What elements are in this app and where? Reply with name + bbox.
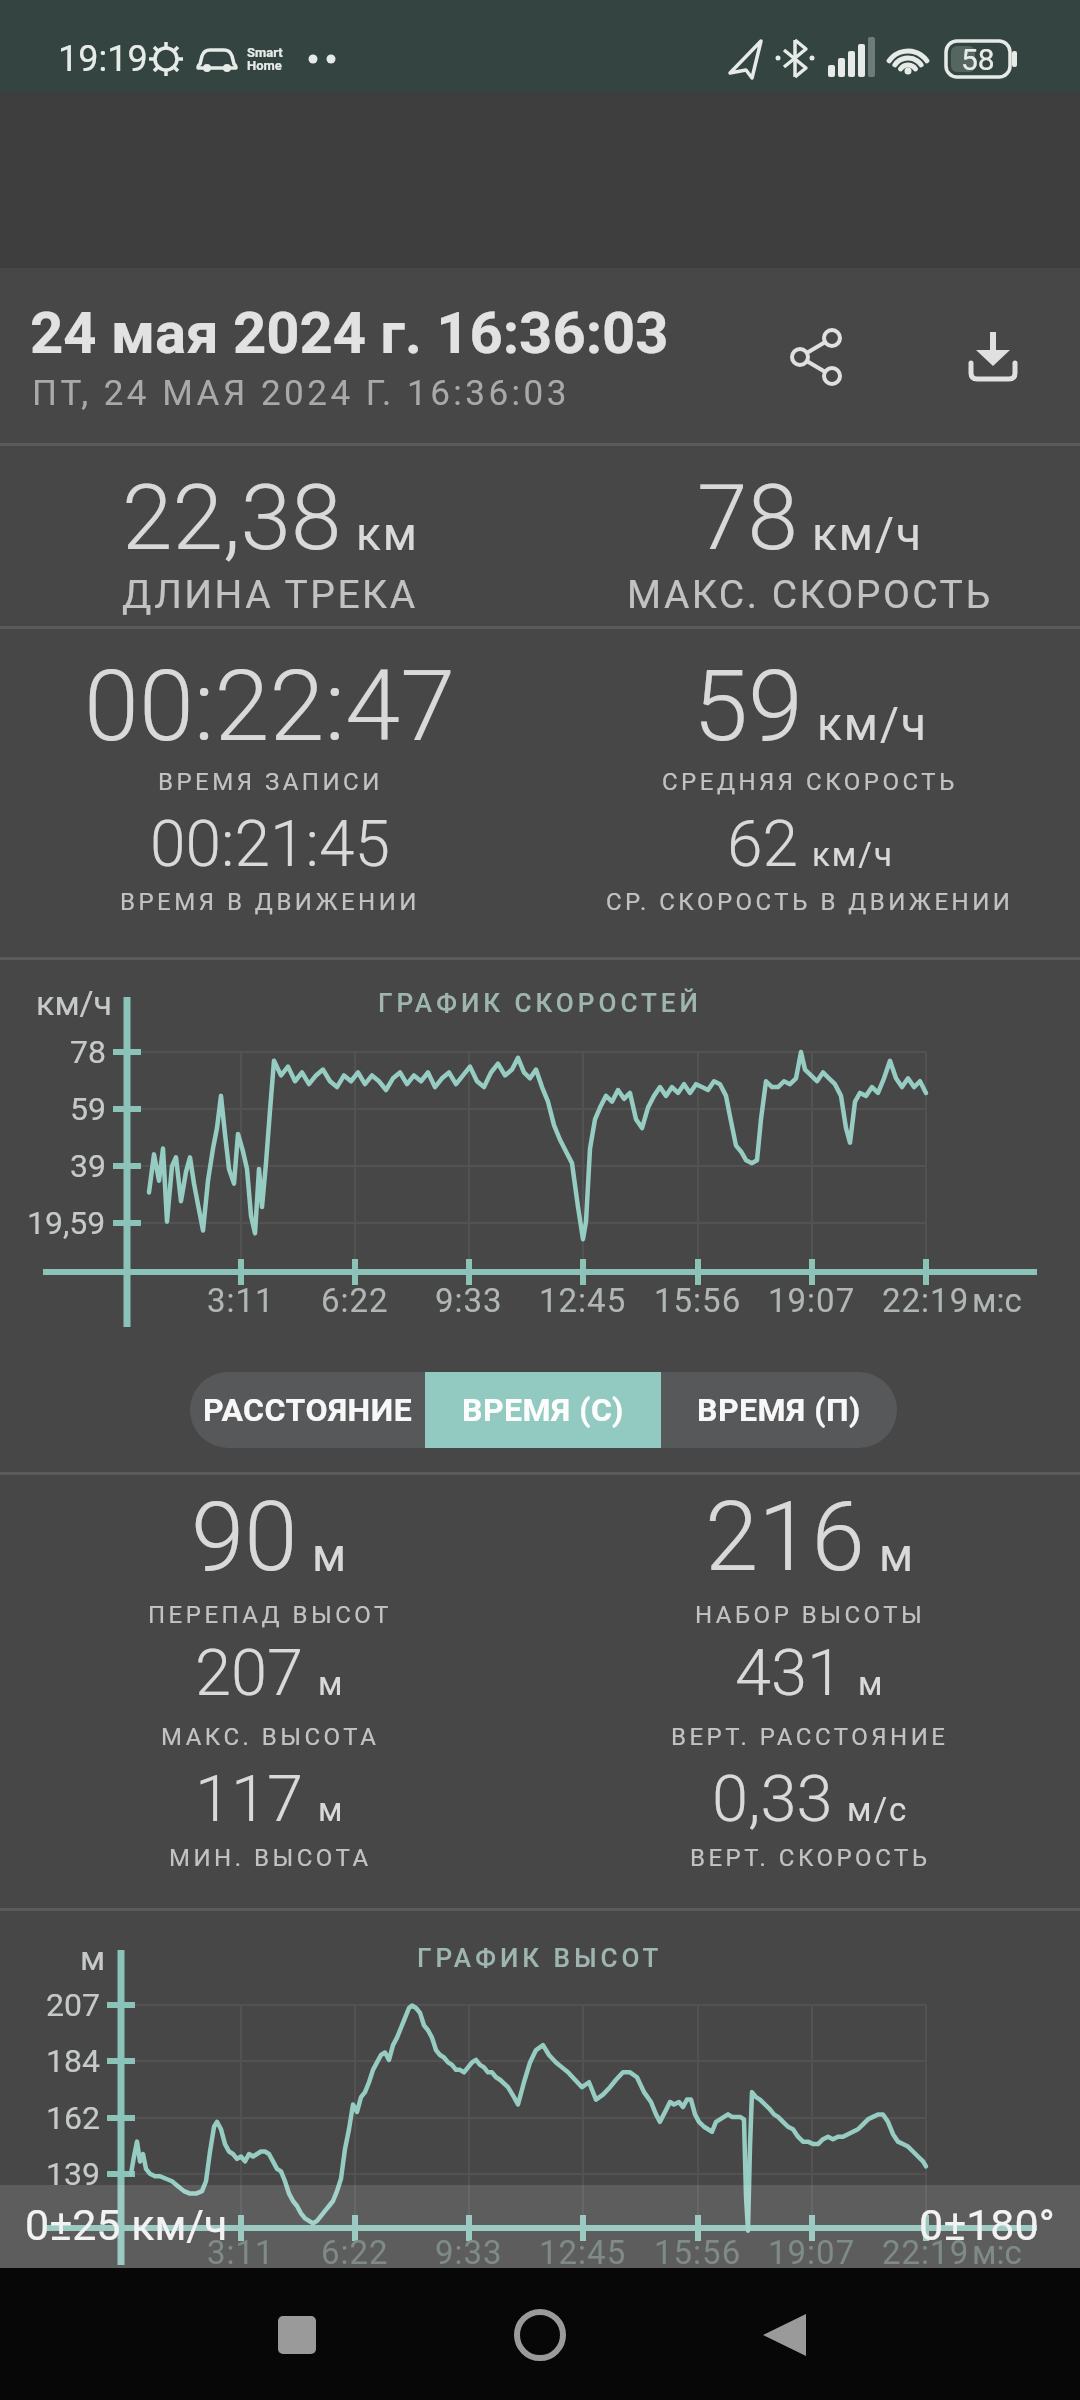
staticText: 22:19 [882, 1281, 970, 1320]
staticText: 00:22:47 [84, 648, 456, 764]
staticText: км/ч [812, 507, 923, 561]
staticText: 0,33 [712, 1761, 833, 1837]
staticText: МАКС. ВЫСОТА [161, 1723, 380, 1751]
button[interactable] [770, 325, 840, 395]
staticText: ДЛИНА ТРЕКА [122, 572, 418, 618]
staticText: 24 мая 2024 г. 16:36:03 [30, 299, 669, 367]
staticText: НАБОР ВЫСОТЫ [695, 1601, 926, 1629]
staticText: 19:19 [58, 38, 148, 80]
staticText: ВРЕМЯ (С) [462, 1391, 624, 1429]
staticText: ПТ, 24 МАЯ 2024 Г. 16:36:03 [32, 373, 570, 414]
staticText: 78 [70, 1033, 106, 1071]
staticText: 6:22 [321, 1281, 389, 1320]
staticText: 00:21:45 [150, 807, 390, 882]
staticText: 184 [46, 2042, 100, 2080]
staticText: 12:45 [539, 1281, 627, 1320]
button[interactable] [247, 2286, 347, 2386]
staticText: 139 [46, 2155, 100, 2193]
staticText: м:с [972, 1281, 1022, 1320]
staticText: 78 [697, 465, 798, 572]
staticText: км/ч [817, 697, 928, 751]
staticText: 216 [705, 1481, 865, 1594]
staticText: м [318, 1664, 345, 1703]
staticText: 58 [961, 42, 995, 77]
staticText: км [356, 507, 419, 561]
staticText: 39 [70, 1147, 106, 1185]
staticText: 0±180° [919, 2200, 1055, 2250]
staticText: 0±25 км/ч [25, 2200, 228, 2250]
staticText: МАКС. СКОРОСТЬ [627, 572, 993, 618]
staticText: 431 [735, 1635, 844, 1711]
staticText: м [312, 1528, 349, 1582]
staticText: ВРЕМЯ В ДВИЖЕНИИ [120, 888, 420, 916]
staticText: ГРАФИК СКОРОСТЕЙ [378, 988, 702, 1018]
button[interactable] [958, 325, 1028, 395]
staticText: ГРАФИК ВЫСОТ [417, 1943, 663, 1973]
staticText: 162 [46, 2099, 100, 2137]
staticText: СРЕДНЯЯ СКОРОСТЬ [662, 768, 958, 796]
staticText: 22:19 [882, 2233, 970, 2272]
staticText: 3:11 [207, 2233, 275, 2272]
staticText: м [318, 1790, 345, 1829]
staticText: 15:56 [654, 1281, 742, 1320]
staticText: 90 [191, 1481, 298, 1594]
staticText: 59 [70, 1090, 106, 1128]
staticText: МИН. ВЫСОТА [169, 1844, 372, 1872]
button[interactable]: РАССТОЯНИЕ [190, 1372, 425, 1448]
button[interactable]: ВРЕМЯ (П) [661, 1372, 897, 1448]
staticText: км/ч [812, 835, 894, 874]
staticText: 12:45 [539, 2233, 627, 2272]
staticText: 3:11 [207, 1281, 275, 1320]
staticText: СР. СКОРОСТЬ В ДВИЖЕНИИ [606, 888, 1014, 916]
staticText: 117 [195, 1761, 304, 1837]
staticText: 9:33 [435, 2233, 503, 2272]
staticText: 6:22 [321, 2233, 389, 2272]
staticText: 19:07 [768, 1281, 856, 1320]
staticText: м [879, 1528, 916, 1582]
staticText: ВРЕМЯ (П) [697, 1391, 861, 1429]
staticText: 19:07 [768, 2233, 856, 2272]
staticText: 9:33 [435, 1281, 503, 1320]
staticText: ВРЕМЯ ЗАПИСИ [158, 768, 383, 796]
staticText: ВЕРТ. СКОРОСТЬ [690, 1844, 931, 1872]
staticText: 59 [693, 648, 803, 764]
staticText: м [858, 1664, 885, 1703]
button[interactable] [490, 2286, 590, 2386]
staticText: ПЕРЕПАД ВЫСОТ [148, 1601, 392, 1629]
staticText: 22,38 [122, 465, 342, 572]
button[interactable]: ВРЕМЯ (С) [425, 1372, 661, 1448]
staticText: 15:56 [654, 2233, 742, 2272]
staticText: м/с [847, 1790, 909, 1829]
staticText: 207 [195, 1635, 304, 1711]
staticText: м [80, 1938, 106, 1978]
staticText: м:с [972, 2233, 1022, 2272]
staticText: 62 [727, 807, 798, 882]
staticText: 207 [46, 1986, 100, 2024]
staticText: км/ч [36, 983, 113, 1023]
staticText: Smart Home [247, 45, 283, 73]
button[interactable] [733, 2286, 833, 2386]
staticText: РАССТОЯНИЕ [203, 1391, 413, 1429]
staticText: 19,59 [27, 1204, 106, 1242]
staticText: ВЕРТ. РАССТОЯНИЕ [671, 1723, 949, 1751]
